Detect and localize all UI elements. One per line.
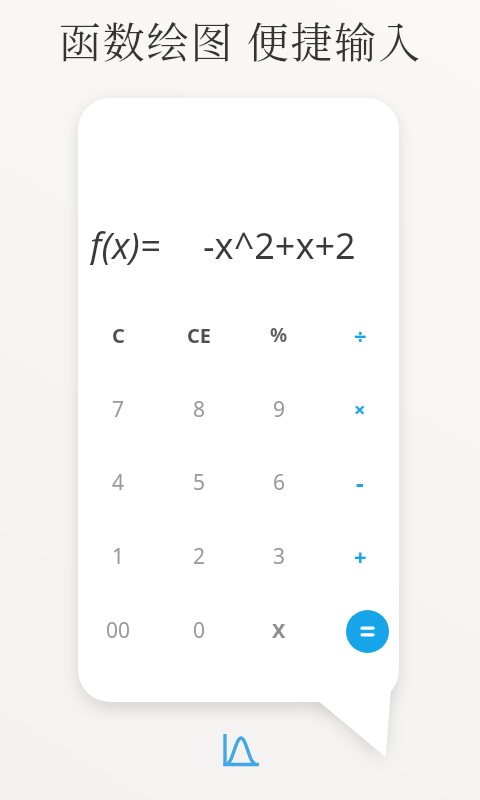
staticText: -x^2+x+2 bbox=[203, 221, 356, 270]
staticText: + bbox=[354, 541, 367, 571]
staticText: 7 bbox=[112, 395, 125, 424]
button[interactable]: 00 bbox=[78, 593, 158, 667]
button[interactable]: 8 bbox=[159, 372, 239, 446]
button[interactable]: × bbox=[320, 372, 399, 446]
button[interactable]: 3 bbox=[239, 519, 319, 593]
staticText: 8 bbox=[193, 395, 206, 424]
button[interactable] bbox=[218, 728, 264, 774]
button[interactable]: 9 bbox=[239, 372, 319, 446]
staticText: % bbox=[270, 322, 288, 348]
button[interactable]: 0 bbox=[159, 593, 239, 667]
button[interactable]: 6 bbox=[239, 445, 319, 519]
button[interactable]: X bbox=[239, 593, 319, 667]
staticText: ÷ bbox=[354, 320, 367, 350]
button[interactable]: ÷ bbox=[320, 298, 399, 372]
staticText: CE bbox=[187, 322, 212, 349]
staticText: 2 bbox=[193, 542, 206, 571]
staticText: 9 bbox=[273, 395, 286, 424]
staticText: 5 bbox=[193, 468, 206, 497]
staticText: 00 bbox=[106, 616, 131, 645]
staticText: - bbox=[356, 466, 364, 499]
button[interactable]: 1 bbox=[78, 519, 158, 593]
staticText: 4 bbox=[112, 468, 125, 497]
staticText: f(x)= bbox=[90, 221, 161, 265]
button[interactable] bbox=[346, 610, 389, 653]
button[interactable]: % bbox=[239, 298, 319, 372]
button[interactable]: 5 bbox=[159, 445, 239, 519]
staticText: 函数绘图 便捷输入 bbox=[59, 10, 422, 70]
button[interactable]: + bbox=[320, 519, 399, 593]
button[interactable]: 4 bbox=[78, 445, 158, 519]
staticText: × bbox=[354, 396, 366, 423]
staticText: 0 bbox=[193, 616, 206, 645]
staticText: 1 bbox=[112, 542, 125, 571]
button[interactable]: 2 bbox=[159, 519, 239, 593]
button[interactable]: C bbox=[78, 298, 158, 372]
staticText: 6 bbox=[273, 468, 286, 497]
staticText: X bbox=[272, 617, 286, 644]
staticText: 3 bbox=[273, 542, 286, 571]
staticText: C bbox=[112, 322, 125, 349]
button[interactable]: 7 bbox=[78, 372, 158, 446]
button[interactable]: CE bbox=[159, 298, 239, 372]
button[interactable]: - bbox=[320, 445, 399, 519]
